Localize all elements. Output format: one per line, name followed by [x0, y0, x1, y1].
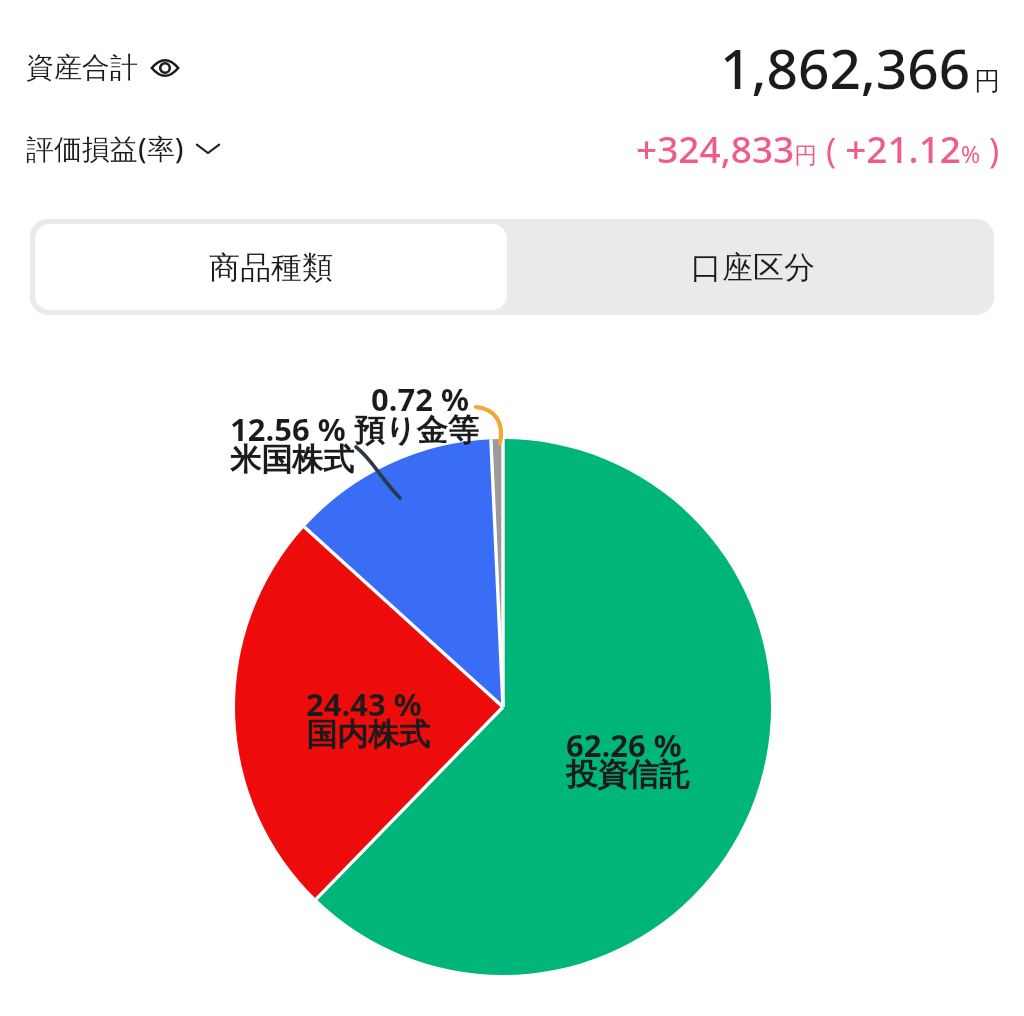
- staticText: 米国株式: [230, 440, 354, 479]
- button[interactable]: 評価損益(率): [26, 129, 222, 167]
- staticText: 評価損益(率): [26, 129, 184, 167]
- staticText: 円: [974, 65, 1000, 98]
- staticText: 国内株式: [306, 715, 430, 754]
- staticText: 商品種類: [209, 248, 333, 287]
- button[interactable]: 口座区分: [512, 219, 994, 315]
- button[interactable]: 資産合計: [26, 50, 180, 85]
- button[interactable]: 資産構成円グラフ: [0, 0, 1024, 1016]
- staticText: 0.72 %: [371, 378, 469, 420]
- staticText: 24.43 %: [306, 683, 422, 725]
- button[interactable]: 評価損益の詳細を開く: [194, 134, 222, 162]
- staticText: 口座区分: [691, 248, 815, 287]
- staticText: +324,833円 ( +21.12% ): [636, 123, 1000, 173]
- button[interactable]: 商品種類: [35, 224, 507, 310]
- staticText: 12.56 % 預り金等: [230, 408, 479, 450]
- button[interactable]: 金額の表示を切り替え: [150, 53, 180, 83]
- staticText: 1,862,366: [720, 30, 971, 105]
- staticText: 62.26 %: [566, 724, 682, 766]
- staticText: 投資信託: [566, 755, 690, 794]
- staticText: 資産合計: [26, 50, 138, 85]
